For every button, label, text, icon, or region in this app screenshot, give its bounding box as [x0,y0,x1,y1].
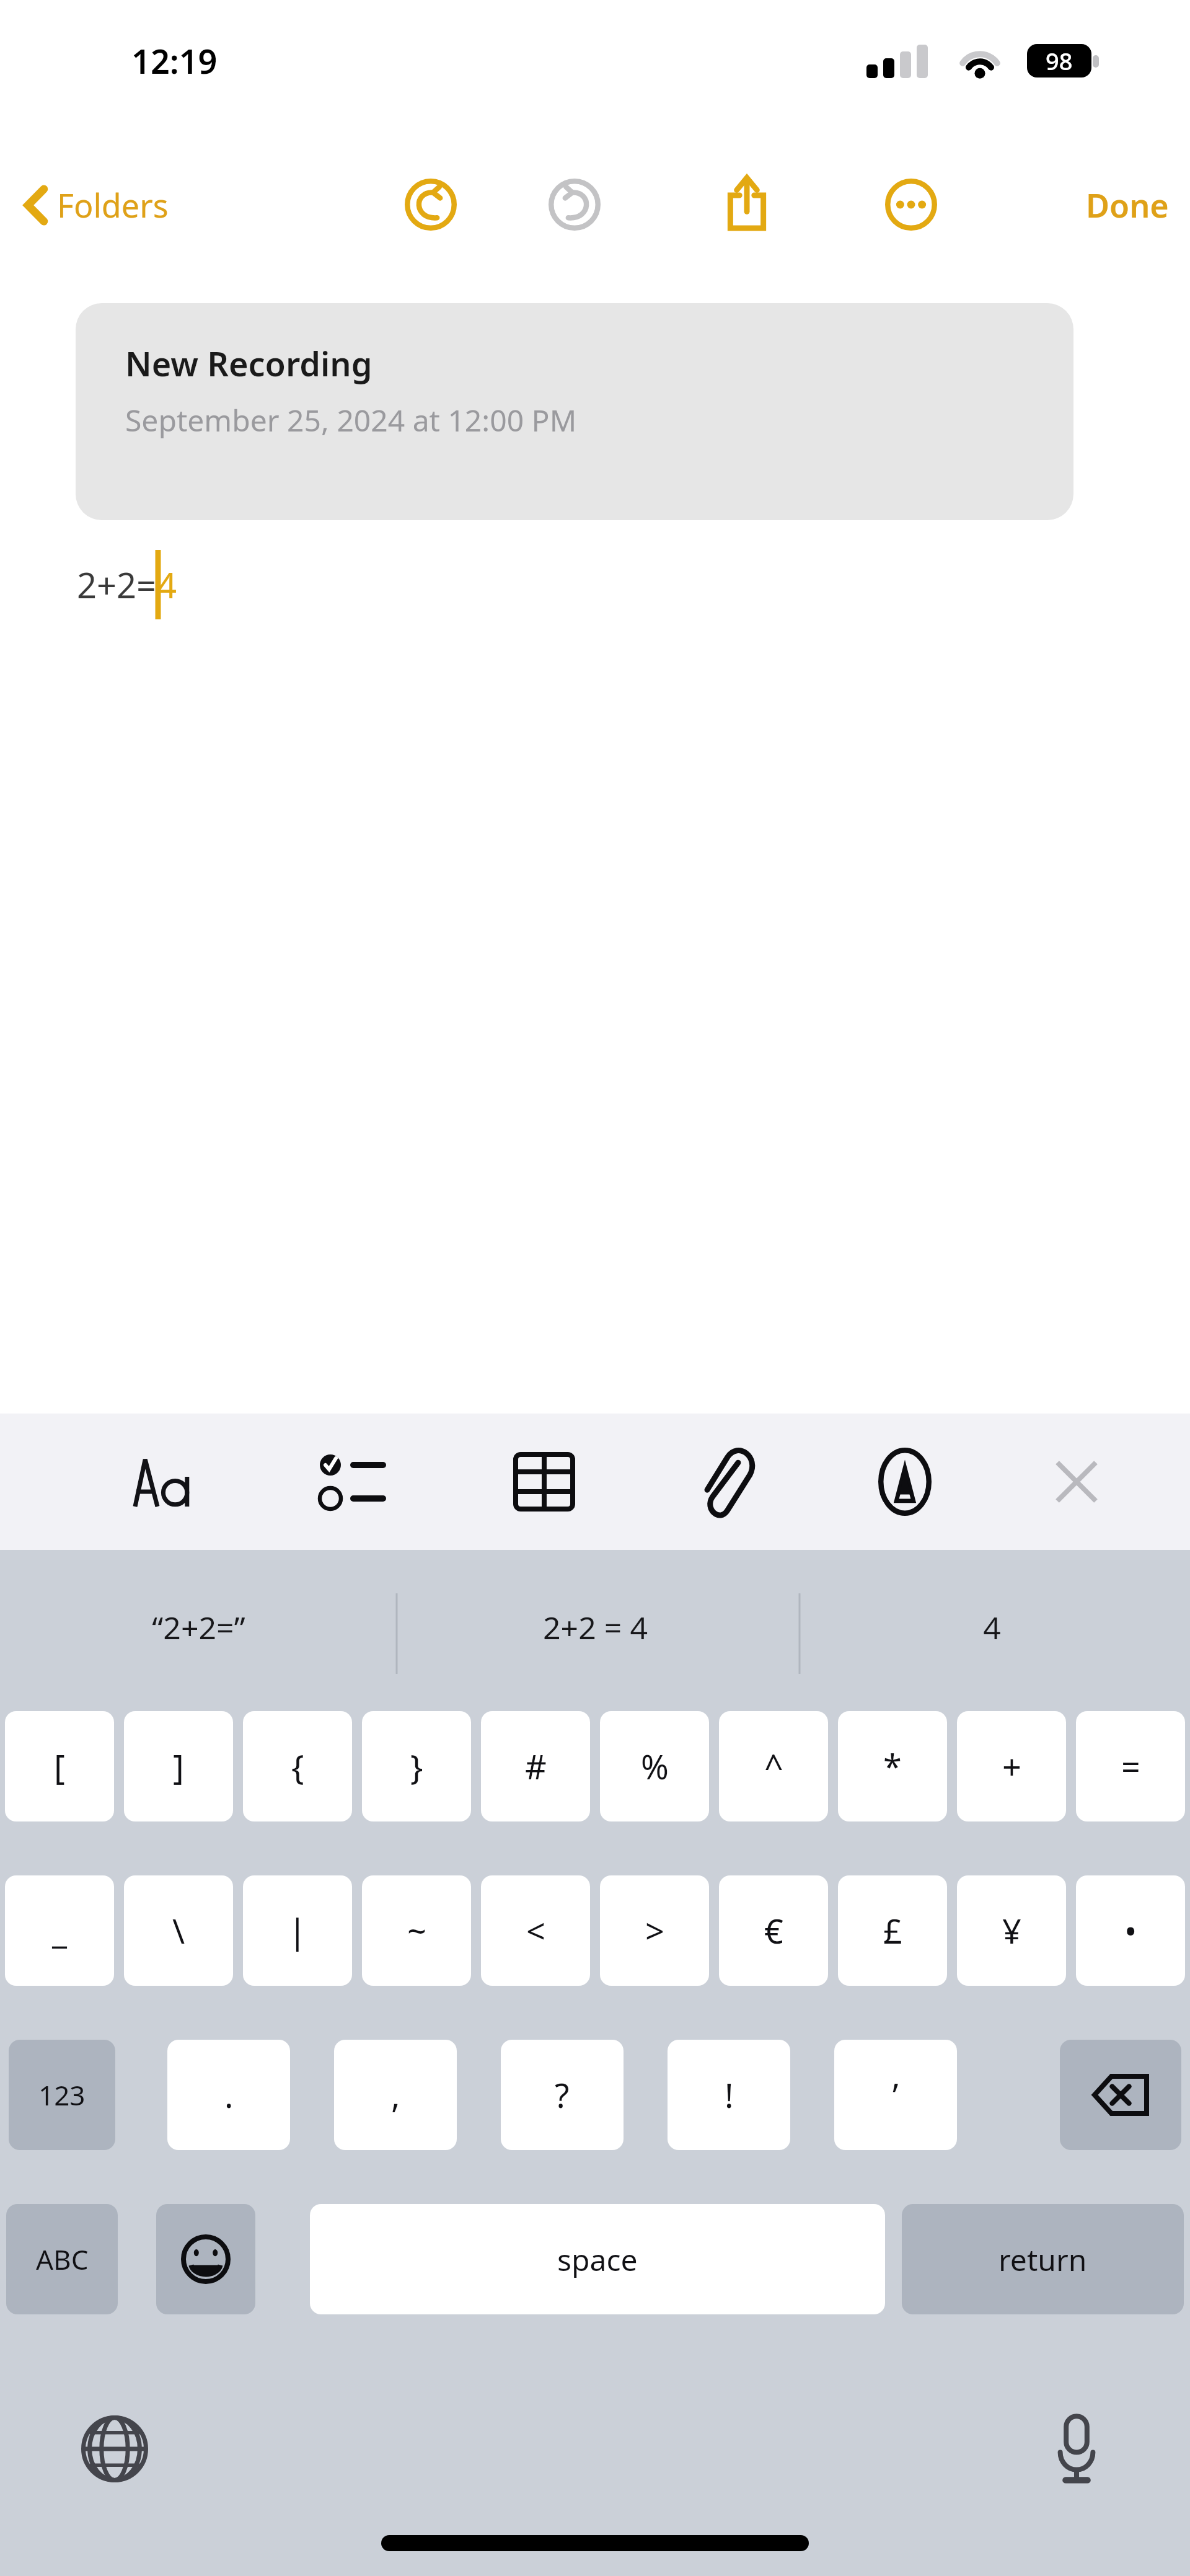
button[interactable]: ! [668,2040,790,2150]
button[interactable]: ~ [362,1875,471,1986]
staticText: = [1121,1743,1140,1789]
staticText: 4 [157,561,177,608]
button[interactable]: + [957,1711,1066,1821]
button[interactable]: “2+2=” [12,1550,384,1705]
staticText: < [526,1908,545,1954]
button[interactable]: _ [5,1875,114,1986]
button[interactable]: Attach [688,1414,765,1550]
button[interactable]: € [719,1875,828,1986]
button[interactable]: Table [506,1414,583,1550]
button[interactable]: \ [124,1875,233,1986]
staticText: \ [172,1908,185,1954]
staticText: 98 [1046,45,1073,77]
button[interactable]: ABC [6,2204,118,2314]
button[interactable]: Markup [866,1414,943,1550]
staticText: ~ [407,1908,426,1954]
button[interactable]: ? [501,2040,624,2150]
button[interactable]: Close keyboard [1038,1414,1115,1550]
staticText: return [998,2239,1087,2280]
button[interactable]: Checklist [314,1414,390,1550]
button[interactable]: Undo [397,170,465,239]
staticText: ^ [764,1743,783,1789]
button[interactable]: < [481,1875,590,1986]
button[interactable]: Text format [126,1414,203,1550]
staticText: { [291,1743,304,1789]
staticText: September 25, 2024 at 12:00 PM [125,400,577,440]
staticText: • [1124,1908,1137,1954]
button[interactable]: Redo [540,170,609,239]
staticText: 2+2= [77,561,157,608]
button[interactable]: > [600,1875,709,1986]
button[interactable]: Backspace [1060,2040,1181,2150]
button[interactable]: New Recording [76,303,1073,520]
staticText: ABC [36,2241,89,2278]
button[interactable]: Change keyboard [74,2409,155,2489]
button[interactable]: • [1076,1875,1185,1986]
staticText: > [645,1908,664,1954]
staticText: 123 [38,2076,86,2113]
staticText: “2+2=” [152,1606,245,1649]
button[interactable]: . [167,2040,290,2150]
staticText: € [764,1908,783,1954]
staticText: Folders [57,183,169,227]
button[interactable]: space [310,2204,885,2314]
staticText: ¥ [1002,1908,1021,1954]
button[interactable]: { [243,1711,352,1821]
button[interactable]: return [902,2204,1184,2314]
staticText: . [224,2072,234,2118]
staticText: 12:19 [131,38,218,84]
staticText: | [288,1908,307,1954]
button[interactable]: £ [838,1875,947,1986]
button[interactable]: * [838,1711,947,1821]
staticText: ] [173,1743,184,1789]
button[interactable]: Done [1077,175,1178,234]
staticText: ! [725,2072,734,2118]
button[interactable]: ’ [834,2040,957,2150]
button[interactable]: [ [5,1711,114,1821]
staticText: * [883,1743,902,1789]
staticText: + [1002,1743,1021,1789]
staticText: # [525,1743,547,1789]
button[interactable]: 4 [806,1550,1178,1705]
button[interactable]: # [481,1711,590,1821]
button[interactable]: Folders [15,175,177,234]
button[interactable]: = [1076,1711,1185,1821]
button[interactable]: % [600,1711,709,1821]
staticText: 4 [983,1606,1001,1649]
button[interactable]: Share [713,170,781,239]
staticText: , [391,2072,400,2118]
button[interactable]: ¥ [957,1875,1066,1986]
button[interactable]: } [362,1711,471,1821]
staticText: Done [1086,183,1169,227]
button[interactable]: 123 [9,2040,115,2150]
button[interactable]: Dictation [1036,2409,1117,2489]
staticText: New Recording [125,340,372,386]
staticText: } [410,1743,423,1789]
button[interactable]: Emoji [156,2204,255,2314]
staticText: % [641,1743,669,1789]
button[interactable]: , [334,2040,457,2150]
button[interactable]: 2+2 = 4 [409,1550,781,1705]
staticText: space [557,2239,638,2280]
staticText: _ [52,1908,67,1954]
staticText: 2+2 = 4 [543,1606,648,1649]
button[interactable]: ^ [719,1711,828,1821]
staticText: ? [555,2072,570,2118]
button[interactable]: ] [124,1711,233,1821]
button[interactable]: More options [877,170,945,239]
staticText: £ [883,1908,902,1954]
button[interactable]: | [243,1875,352,1986]
staticText: ’ [892,2072,899,2118]
staticText: [ [54,1743,65,1789]
